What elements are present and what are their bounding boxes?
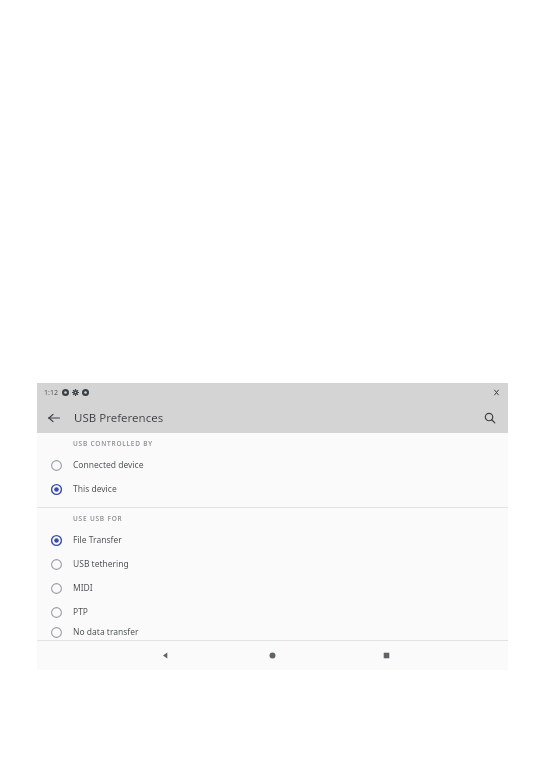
staticText: 1:12 [44,388,58,398]
button[interactable]: Home [252,641,292,670]
staticText: Connected device [73,459,144,471]
staticText: USB tethering [73,558,129,570]
button[interactable]: This device [37,477,508,501]
button[interactable]: MIDI [37,576,508,600]
staticText: USB CONTROLLED BY [73,439,153,448]
button[interactable]: Connected device [37,453,508,477]
staticText: MIDI [73,582,93,594]
button[interactable]: No data transfer [37,624,508,640]
staticText: PTP [73,606,89,618]
staticText: File Transfer [73,534,122,546]
button[interactable]: File Transfer [37,528,508,552]
button[interactable]: PTP [37,600,508,624]
staticText: No data transfer [73,626,139,638]
staticText: USE USB FOR [73,514,123,523]
button[interactable]: Recent apps [366,641,406,670]
button[interactable]: USB tethering [37,552,508,576]
staticText: USB Preferences [74,410,164,426]
button[interactable]: Search [479,407,501,429]
staticText: This device [73,483,117,495]
button[interactable]: Back [43,407,65,429]
button[interactable]: Back [145,641,185,670]
